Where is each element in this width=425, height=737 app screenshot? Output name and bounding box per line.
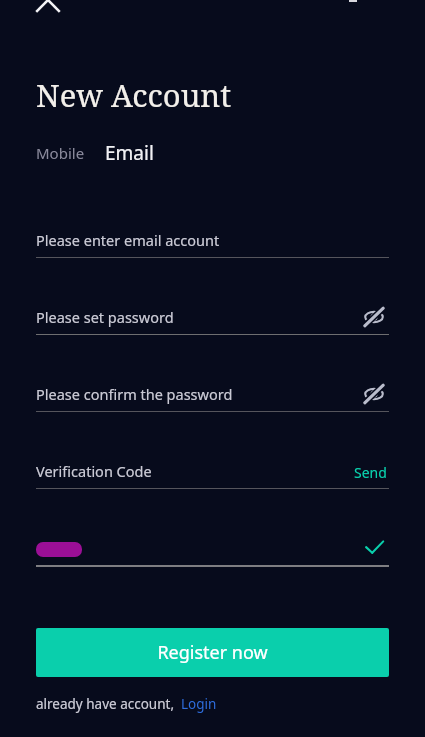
staticText: Register now <box>157 640 268 665</box>
button[interactable]: Show confirm password <box>359 382 389 406</box>
other: Valid <box>359 536 389 560</box>
staticText: Login <box>181 695 217 713</box>
staticText: Please enter email account <box>36 230 220 250</box>
button[interactable]: Mobile <box>36 143 85 163</box>
button[interactable]: Send <box>352 459 389 483</box>
button[interactable]: Please confirm the password <box>36 382 389 412</box>
button[interactable]: Show password <box>359 305 389 329</box>
button[interactable]: Login <box>181 695 217 713</box>
button[interactable]: Register now <box>36 628 389 677</box>
staticText: Email <box>105 140 154 166</box>
staticText: New Account <box>36 74 232 116</box>
staticText: already have account, <box>36 695 175 713</box>
staticText: Mobile <box>36 143 85 163</box>
staticText: Verification Code <box>36 461 152 481</box>
staticText: Please confirm the password <box>36 384 233 404</box>
button[interactable]: Please set password <box>36 305 389 335</box>
button[interactable]: Close <box>31 0 65 17</box>
button[interactable]: Email <box>105 140 154 166</box>
staticText: Send <box>354 463 387 479</box>
button[interactable]: Valid <box>36 536 389 567</box>
button[interactable]: Verification Code <box>36 459 389 489</box>
staticText: Please set password <box>36 307 174 327</box>
button[interactable]: Please enter email account <box>36 228 389 258</box>
